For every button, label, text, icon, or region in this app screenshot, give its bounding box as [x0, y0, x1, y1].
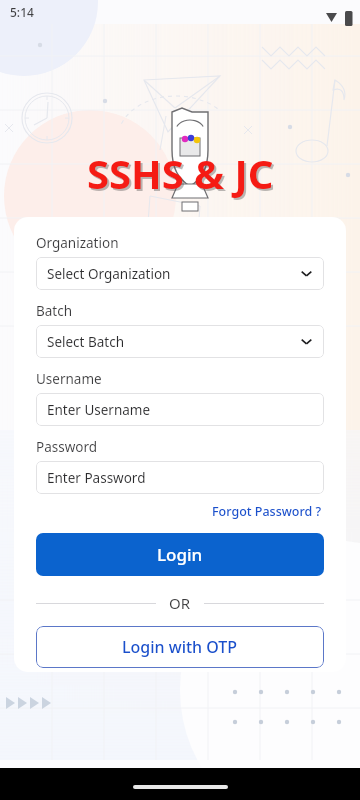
- button[interactable]: Enter Password: [36, 461, 324, 494]
- staticText: Select Batch: [47, 333, 299, 351]
- staticText: OR: [169, 593, 191, 613]
- staticText: Password: [36, 438, 98, 456]
- staticText: Select Organization: [47, 265, 299, 283]
- button[interactable]: Login: [36, 533, 324, 576]
- staticText: 5:14: [10, 4, 34, 20]
- staticText: Organization: [36, 234, 119, 252]
- other: Expand Select Batch: [299, 334, 314, 349]
- staticText: SSHS & JC: [89, 148, 276, 202]
- staticText: Forgot Password ?: [212, 503, 322, 520]
- button[interactable]: Login with OTP: [36, 626, 324, 668]
- staticText: Enter Username: [47, 401, 151, 419]
- button[interactable]: Select Batch: [36, 325, 324, 358]
- staticText: Enter Password: [47, 469, 146, 487]
- button[interactable]: Select Organization: [36, 257, 324, 290]
- button[interactable]: Forgot Password ?: [210, 501, 324, 522]
- staticText: Login with OTP: [122, 636, 238, 658]
- staticText: Login: [157, 543, 203, 566]
- button[interactable]: Enter Username: [36, 393, 324, 426]
- staticText: Batch: [36, 302, 73, 320]
- staticText: Username: [36, 370, 102, 388]
- staticText: SSHS & JC: [87, 146, 274, 200]
- other: Expand Select Organization: [299, 266, 314, 281]
